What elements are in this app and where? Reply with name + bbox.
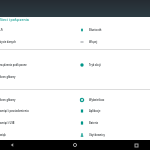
button[interactable]: kran główny <box>0 71 73 82</box>
button[interactable]: Recents <box>126 140 146 150</box>
button[interactable]: Więcej <box>75 36 150 47</box>
button[interactable]: Użytkownicy <box>75 129 150 140</box>
button[interactable]: amięć i powiadomienia <box>0 105 73 116</box>
button[interactable]: więk <box>0 129 73 140</box>
staticText: życie danych <box>0 40 16 43</box>
staticText: amięć i USB <box>0 121 15 124</box>
staticText: kran główny <box>0 98 16 101</box>
staticText: Aplikacje <box>89 109 101 112</box>
button[interactable]: Back <box>2 140 22 150</box>
staticText: Wyświetlacz <box>89 98 105 101</box>
button[interactable]: Home <box>65 140 85 150</box>
button[interactable]: amięć i USB <box>0 117 73 128</box>
button[interactable]: Bluetooth <box>75 24 150 35</box>
staticText: Bateria <box>89 121 99 124</box>
staticText: więk <box>0 133 6 136</box>
staticText: rządzenia podłączone <box>0 63 27 66</box>
staticText: Bluetooth <box>89 28 102 31</box>
staticText: Więcej <box>89 40 98 43</box>
button[interactable]: Bateria <box>75 117 150 128</box>
staticText: Użytkownicy <box>89 133 105 136</box>
button[interactable]: rządzenia podłączone <box>0 59 73 70</box>
button[interactable]: życie danych <box>0 36 73 47</box>
staticText: Sieci i połączenia <box>0 17 29 22</box>
staticText: kran główny <box>0 75 16 78</box>
staticText: -Fi <box>0 28 3 31</box>
staticText: Tryb akcji <box>89 63 101 66</box>
button[interactable]: Aplikacje <box>75 105 150 116</box>
button[interactable]: Wyświetlacz <box>75 94 150 105</box>
button[interactable]: Tryb akcji <box>75 59 150 70</box>
button[interactable]: kran główny <box>0 94 73 105</box>
staticText: amięć i powiadomienia <box>0 109 29 112</box>
button[interactable]: -Fi <box>0 24 73 35</box>
